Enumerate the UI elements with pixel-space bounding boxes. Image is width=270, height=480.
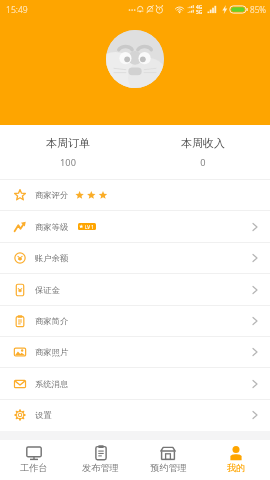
staticText: 预约管理	[150, 462, 187, 474]
staticText: 系统消息	[35, 379, 69, 389]
staticText: 商家评分	[35, 190, 69, 200]
staticText: 商家照片	[35, 347, 69, 357]
staticText: 4G	[196, 4, 203, 11]
staticText: 工作台	[20, 462, 48, 474]
button[interactable]: 商家照片	[0, 337, 270, 368]
button[interactable]: 商家评分	[0, 180, 270, 211]
staticText: 保证金	[35, 285, 60, 295]
button[interactable]: 商家简介	[0, 306, 270, 337]
button[interactable]: 保证金	[0, 274, 270, 306]
staticText: 我的	[227, 462, 246, 474]
staticText: 85%	[250, 4, 266, 15]
button[interactable]: 设置	[0, 400, 270, 431]
button[interactable]: 本周收入	[135, 125, 270, 179]
button[interactable]: Avatar	[106, 30, 164, 88]
staticText: 账户余额	[35, 253, 69, 263]
button[interactable]: 预约管理	[134, 440, 202, 480]
staticText: 15:49	[6, 4, 28, 16]
staticText: 100	[60, 156, 76, 169]
staticText: 设置	[35, 410, 52, 420]
staticText: LV 1	[85, 224, 94, 230]
staticText: 商家等级	[35, 222, 69, 232]
staticText: 5G	[196, 9, 203, 16]
button[interactable]: 账户余额	[0, 243, 270, 274]
button[interactable]: 商家等级	[0, 211, 270, 243]
button[interactable]: 系统消息	[0, 368, 270, 400]
button[interactable]: 我的	[202, 440, 270, 480]
button[interactable]: 本周订单	[0, 125, 135, 179]
staticText: 商家简介	[35, 316, 69, 326]
button[interactable]: 发布管理	[67, 440, 134, 480]
staticText: 发布管理	[82, 462, 119, 474]
staticText: 0	[200, 156, 206, 169]
staticText: 本周订单	[46, 136, 90, 150]
button[interactable]: 工作台	[0, 440, 67, 480]
staticText: 本周收入	[181, 136, 225, 150]
